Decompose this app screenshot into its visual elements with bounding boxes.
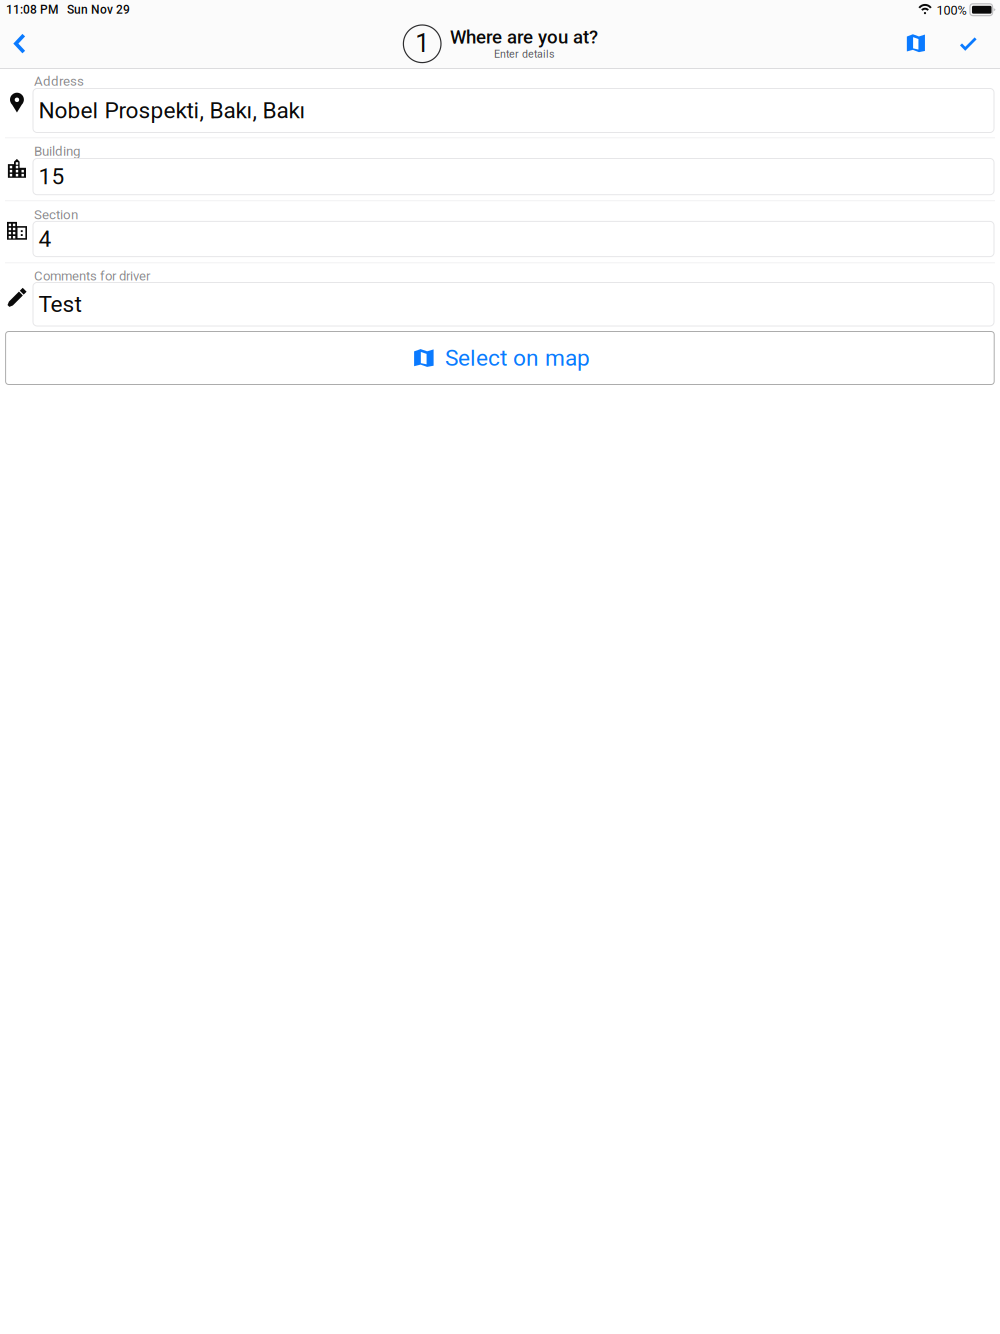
button[interactable]: Show on map <box>894 21 938 65</box>
staticText: Building <box>34 143 80 159</box>
staticText: Where are you at? <box>450 26 598 48</box>
staticText: Nobel Prospekti, Bakı, Bakı <box>38 97 305 124</box>
button[interactable]: Done <box>946 22 990 66</box>
staticText: Comments for driver <box>34 268 150 284</box>
button[interactable]: Select on map <box>6 331 994 384</box>
staticText: Test <box>38 291 81 318</box>
staticText: 1 <box>415 28 429 58</box>
button[interactable]: Back <box>0 22 43 66</box>
staticText: 15 <box>38 163 64 190</box>
staticText: Select on map <box>445 345 590 371</box>
staticText: 11:08 PM <box>6 3 58 17</box>
staticText: Address <box>34 73 84 89</box>
staticText: 100% <box>936 3 966 18</box>
staticText: Enter details <box>494 48 555 60</box>
staticText: Section <box>34 207 78 223</box>
staticText: Sun Nov 29 <box>67 3 130 17</box>
button[interactable]: Step 1 <box>400 22 444 66</box>
staticText: 4 <box>38 226 51 252</box>
